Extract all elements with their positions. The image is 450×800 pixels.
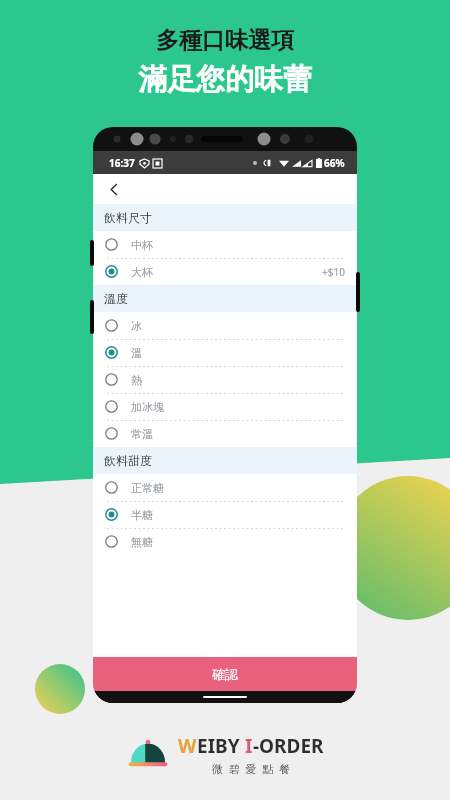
staticText: 溫度 <box>104 291 128 306</box>
staticText: 大杯 <box>131 265 153 279</box>
button[interactable]: 加冰塊 <box>93 393 357 420</box>
button[interactable]: Back <box>101 176 127 202</box>
staticText: 加冰塊 <box>131 400 164 414</box>
button[interactable]: 中杯 <box>93 231 357 258</box>
staticText: 滿足您的味蕾 <box>138 61 312 98</box>
button[interactable]: 冰 <box>93 312 357 339</box>
staticText: 多種口味選項 <box>156 26 294 55</box>
button[interactable]: 熱 <box>93 366 357 393</box>
staticText: I <box>245 733 253 759</box>
staticText: 溫 <box>131 346 142 360</box>
staticText: 飲料尺寸 <box>104 210 152 225</box>
staticText: 半糖 <box>131 508 153 522</box>
staticText: -ORDER <box>253 733 324 759</box>
staticText: 熱 <box>131 373 142 387</box>
staticText: 正常糖 <box>131 481 164 495</box>
button[interactable]: 大杯 <box>93 258 357 285</box>
staticText: 中杯 <box>131 238 153 252</box>
staticText: 常溫 <box>131 427 153 441</box>
staticText: 確認 <box>212 666 238 682</box>
staticText: 飲料甜度 <box>104 453 152 468</box>
staticText: 16:37 <box>109 156 135 170</box>
button[interactable]: 溫 <box>93 339 357 366</box>
button[interactable]: 常溫 <box>93 420 357 447</box>
staticText: 無糖 <box>131 535 153 549</box>
button[interactable]: 確認 <box>93 657 357 691</box>
staticText: +$10 <box>322 265 345 279</box>
button[interactable]: 正常糖 <box>93 474 357 501</box>
staticText: 微 碧 愛 點 餐 <box>212 761 290 776</box>
staticText: 冰 <box>131 319 142 333</box>
staticText: EIBY <box>197 733 245 759</box>
button[interactable]: 無糖 <box>93 528 357 555</box>
button[interactable]: 半糖 <box>93 501 357 528</box>
staticText: W <box>178 733 197 759</box>
staticText: 66% <box>324 156 345 170</box>
